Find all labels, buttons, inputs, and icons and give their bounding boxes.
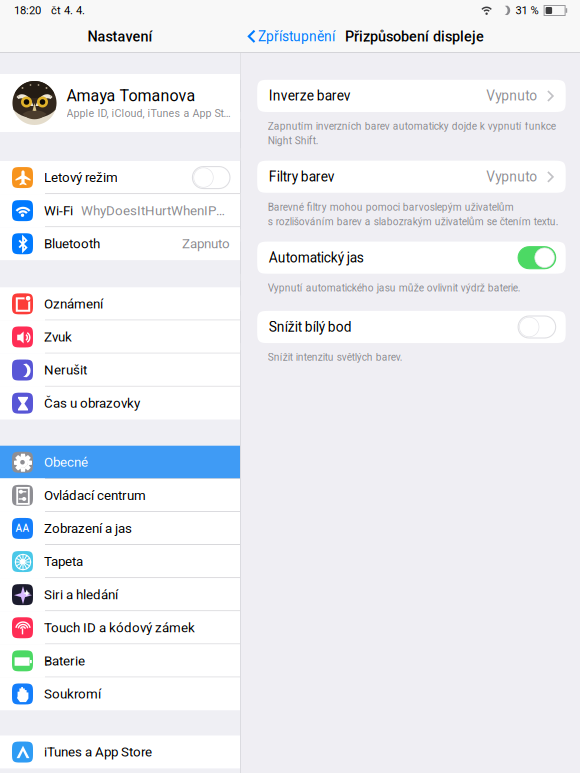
staticText: Obecné [44,454,88,470]
staticText: čt 4. 4. [51,4,85,17]
staticText: Vypnuto [486,169,537,185]
staticText: Amaya Tomanova [66,86,195,105]
staticText: AA [15,523,29,534]
button[interactable]: Touch ID a kódový zámek [0,611,240,644]
staticText: Bluetooth [44,236,100,251]
button[interactable]: Nerušit [0,353,240,387]
staticText: Nastavení [87,28,152,45]
staticText: iTunes a App Store [44,744,152,760]
staticText: Zvuk [44,329,72,345]
staticText: Čas u obrazovky [44,395,140,411]
staticText: Zobrazení a jas [44,521,132,536]
staticText: 18:20 [14,4,41,17]
staticText: Night Shift. [268,135,319,147]
button[interactable]: AA [0,512,240,545]
staticText: Zapnuto [182,236,230,251]
staticText: Letový režim [44,170,118,185]
staticText: Zpřístupnění [258,29,335,45]
button[interactable]: Filtry barev [241,161,580,193]
button[interactable]: Soukromí [0,677,240,710]
button[interactable]: Amaya Tomanova [0,74,240,132]
button[interactable]: Wi-Fi [0,194,240,227]
staticText: Touch ID a kódový zámek [44,620,195,635]
button[interactable]: Letový režim [0,161,240,194]
staticText: Barevné filtry mohou pomoci barvoslepým … [268,201,514,213]
staticText: Tapeta [44,554,83,569]
button[interactable]: Zpřístupnění [240,29,335,45]
staticText: s rozlišováním barev a slabozrakým uživa… [268,216,559,228]
staticText: Soukromí [44,686,101,702]
staticText: Siri a hledání [44,587,118,602]
staticText: Nerušit [44,362,87,378]
staticText: Zapnutím inverzních barev automaticky do… [268,120,556,132]
staticText: Vypnutí automatického jasu může ovlivnit… [268,282,521,294]
button[interactable]: Baterie [0,644,240,677]
staticText: Oznámení [44,296,103,312]
button[interactable]: Automatický jas [241,242,580,274]
staticText: Přizpůsobení displeje [345,28,484,45]
button[interactable]: Zvuk [0,320,240,353]
button[interactable]: Siri a hledání [0,578,240,611]
staticText: Filtry barev [269,169,335,185]
staticText: Snížit intenzitu světlých barev. [268,351,403,363]
button[interactable]: Obecné [0,446,240,479]
button[interactable]: Tapeta [0,545,240,578]
button[interactable]: Bluetooth [0,227,240,260]
staticText: Inverze barev [269,88,351,104]
button[interactable]: Ovládací centrum [0,479,240,512]
staticText: Wi-Fi [44,203,73,218]
button[interactable]: Čas u obrazovky [0,387,240,420]
staticText: Ovládací centrum [44,487,146,503]
button[interactable]: Oznámení [0,287,240,320]
staticText: Baterie [44,653,85,669]
button[interactable]: Inverze barev [241,80,580,112]
staticText: Snížit bílý bod [269,319,352,335]
button[interactable]: iTunes a App Store [0,735,240,769]
staticText: 31 % [516,4,539,17]
staticText: Automatický jas [269,250,364,266]
staticText: WhyDoesItHurtWhenIP_… [81,203,230,218]
staticText: Apple ID, iCloud, iTunes a App St… [66,107,230,120]
staticText: Vypnuto [486,88,537,104]
button[interactable]: Snížit bílý bod [241,311,580,343]
